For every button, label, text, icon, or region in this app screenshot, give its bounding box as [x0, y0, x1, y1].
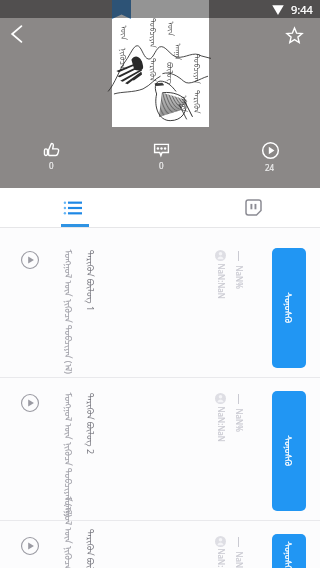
button[interactable]: Play: [240, 134, 300, 180]
button[interactable]: ᠳᠡᠷᠢᠭᠦᠨ ᠪᠦᠯᠦᠭ 3: [0, 521, 320, 568]
staticText: ᠰᠣᠨᠦᠰᠬᠦ: [281, 292, 297, 323]
staticText: ᠦᠨ: [165, 21, 179, 36]
staticText: ᠰᠣᠨᠦᠰᠬᠦ: [281, 435, 297, 466]
staticText: ᠪᠦᠯᠦᠭ: [165, 62, 179, 84]
staticText: ᠳᠡᠷᠢᠭᠦᠨ: [192, 90, 206, 114]
staticText: NaN:NaN: [215, 548, 226, 568]
staticText: ᠠᠨᠭᠠ: [178, 95, 192, 112]
staticText: ᠲᠣᠪᠴᠢᠶᠠᠨ: [192, 54, 206, 84]
button[interactable]: ᠰᠣᠨᠦᠰᠬᠦ: [272, 534, 306, 568]
staticText: NaN:NaN: [215, 263, 226, 299]
staticText: 0: [49, 160, 54, 171]
staticText: ᠦᠨ: [118, 25, 132, 40]
button[interactable]: ᠰᠣᠨᠦᠰᠬᠦ: [272, 391, 306, 511]
staticText: ᠮᠣᠩᠭᠣᠯ ᠦᠨ ᠨᠢᠭᠦᠴᠠ ᠲᠣᠪᠴᠢᠶᠠᠨ (ᠡᠯ): [61, 496, 77, 568]
staticText: ᠳᠡᠷᠢᠭᠦᠨ ᠪᠦᠯᠦᠭ 2: [84, 393, 100, 455]
button[interactable]: Comments: [131, 134, 191, 180]
staticText: ᠠᠨᠭᠠ: [172, 43, 186, 60]
staticText: ᠮᠣᠩᠭᠣᠯ ᠦᠨ ᠨᠢᠭᠦᠴᠠ ᠲᠣᠪᠴᠢᠶᠠᠨ (ᠡᠯ): [61, 249, 77, 374]
button[interactable]: Notes: [180, 188, 320, 227]
staticText: 9:44: [291, 2, 313, 17]
staticText: ᠮᠣᠩᠭᠣᠯ ᠦᠨ ᠨᠢᠭᠦᠴᠠ ᠲᠣᠪᠴᠢᠶᠠᠨ (ᠡᠯ): [61, 392, 77, 517]
button[interactable]: ᠳᠡᠷᠢᠭᠦᠨ ᠪᠦᠯᠦᠭ 2: [0, 378, 320, 520]
button[interactable]: ᠰᠣᠨᠦᠰᠬᠦ: [272, 248, 306, 368]
staticText: NaN%: [233, 408, 244, 432]
button[interactable]: Chapters: [0, 188, 146, 227]
staticText: ᠲᠣᠪᠴᠢᠶᠠᠨ: [148, 18, 162, 48]
staticText: 0: [159, 160, 164, 171]
staticText: NaN%: [233, 265, 244, 289]
button[interactable]: Back: [0, 15, 36, 53]
staticText: ᠳᠡᠷᠢᠭᠦᠨ: [148, 58, 162, 82]
staticText: NaN:NaN: [215, 406, 226, 442]
staticText: 24: [265, 162, 275, 173]
staticText: NaN%: [233, 551, 244, 568]
button[interactable]: Like: [21, 134, 81, 180]
button[interactable]: ᠳᠡᠷᠢᠭᠦᠨ ᠪᠦᠯᠦᠭ 1: [0, 235, 320, 377]
staticText: ᠨᠢᠭᠦᠴᠠ: [118, 48, 132, 70]
staticText: ᠳᠡᠷᠢᠭᠦᠨ ᠪᠦᠯᠦᠭ 1: [84, 250, 100, 312]
button[interactable]: Favorite: [275, 16, 313, 54]
staticText: ᠰᠣᠨᠦᠰᠬᠦ: [281, 541, 297, 568]
staticText: ᠳᠡᠷᠢᠭᠦᠨ ᠪᠦᠯᠦᠭ 3: [84, 529, 100, 568]
